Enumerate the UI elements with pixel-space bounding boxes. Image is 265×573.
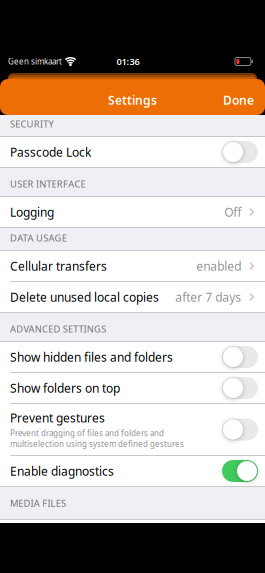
staticText: 01:36 — [116, 55, 139, 68]
staticText: after 7 days — [175, 289, 241, 305]
button[interactable]: Show hidden files and folders — [222, 346, 258, 368]
button[interactable]: Logging — [0, 197, 265, 227]
staticText: SECURITY — [10, 118, 53, 130]
staticText: Geen simkaart — [8, 56, 62, 67]
staticText: Logging — [10, 204, 54, 220]
button[interactable]: Cellular transfers — [0, 251, 265, 281]
staticText: Off — [224, 204, 241, 220]
button[interactable]: Passcode Lock — [222, 141, 258, 163]
staticText: Prevent gestures — [10, 410, 105, 426]
staticText: Enable diagnostics — [10, 463, 114, 479]
button[interactable]: Done — [223, 92, 254, 108]
staticText: Delete unused local copies — [10, 289, 159, 305]
staticText: Passcode Lock — [10, 144, 91, 160]
staticText: DATA USAGE — [10, 232, 67, 244]
button[interactable]: Prevent gestures — [222, 418, 258, 440]
staticText: Cellular transfers — [10, 258, 107, 274]
staticText: Prevent dragging of files and folders an… — [10, 428, 184, 449]
button[interactable]: Show folders on top — [222, 377, 258, 399]
staticText: Settings — [108, 92, 157, 108]
staticText: MEDIA FILES — [10, 497, 66, 509]
staticText: USER INTERFACE — [10, 178, 86, 190]
staticText: ADVANCED SETTINGS — [10, 323, 106, 335]
button[interactable]: Delete unused local copies — [0, 282, 265, 312]
staticText: enabled — [196, 258, 241, 274]
staticText: Show folders on top — [10, 380, 120, 396]
staticText: Show hidden files and folders — [10, 349, 173, 365]
button[interactable]: Enable diagnostics — [222, 460, 258, 482]
staticText: Done — [223, 92, 254, 108]
